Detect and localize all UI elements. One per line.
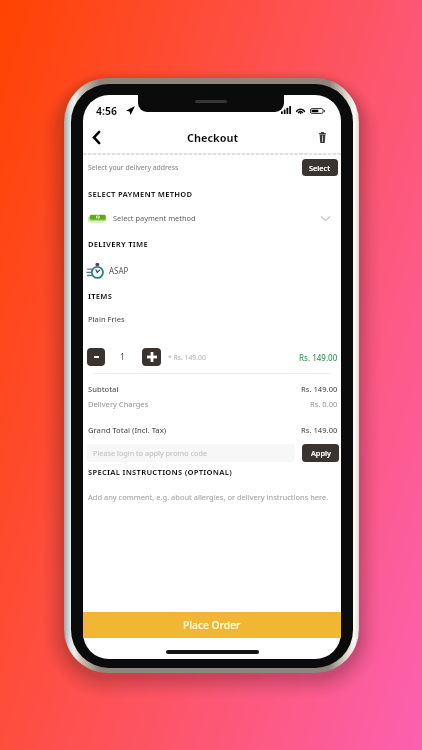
button[interactable]: Back	[84, 125, 108, 149]
staticText: Apply	[311, 448, 331, 458]
staticText: 4:56	[96, 104, 117, 118]
staticText: Rs. 149.00	[301, 384, 338, 394]
staticText: Checkout	[187, 130, 239, 145]
staticText: ASAP	[109, 265, 129, 276]
button[interactable]: Increase quantity	[142, 348, 161, 366]
staticText: Add any comment, e.g. about allergies, o…	[88, 492, 329, 502]
staticText: 1	[120, 351, 125, 363]
staticText: * Rs. 149.00	[168, 353, 206, 362]
staticText: DELIVERY TIME	[88, 239, 148, 249]
staticText: Rs. 149.00	[299, 352, 338, 363]
staticText: ITEMS	[88, 291, 113, 301]
staticText: Please login to apply promo code	[93, 448, 208, 458]
staticText: Select payment method	[113, 213, 196, 223]
staticText: Rs. 149.00	[301, 425, 338, 435]
staticText: Rs. 0.00	[310, 399, 338, 409]
button[interactable]: ASAP	[83, 261, 341, 280]
button[interactable]: Please login to apply promo code	[87, 444, 295, 462]
staticText: Place Order	[183, 618, 241, 632]
staticText: Grand Total (Incl. Tax)	[88, 425, 167, 435]
staticText: Delivery Charges	[88, 399, 149, 409]
staticText: SELECT PAYMENT METHOD	[88, 189, 193, 199]
staticText: Subtotal	[88, 384, 119, 394]
staticText: Select	[309, 163, 331, 173]
staticText: Plain Fries	[88, 314, 125, 324]
button[interactable]: Select	[302, 159, 338, 176]
button[interactable]: Select your delivery address	[83, 155, 341, 180]
button[interactable]: Place Order	[83, 612, 341, 638]
button[interactable]: Decrease quantity	[87, 348, 105, 366]
button[interactable]: Apply	[302, 444, 339, 462]
button[interactable]: Delete	[312, 127, 332, 147]
staticText: SPECIAL INSTRUCTIONS (OPTIONAL)	[88, 467, 233, 477]
button[interactable]: Select payment method	[83, 208, 341, 228]
staticText: Select your delivery address	[88, 163, 179, 172]
